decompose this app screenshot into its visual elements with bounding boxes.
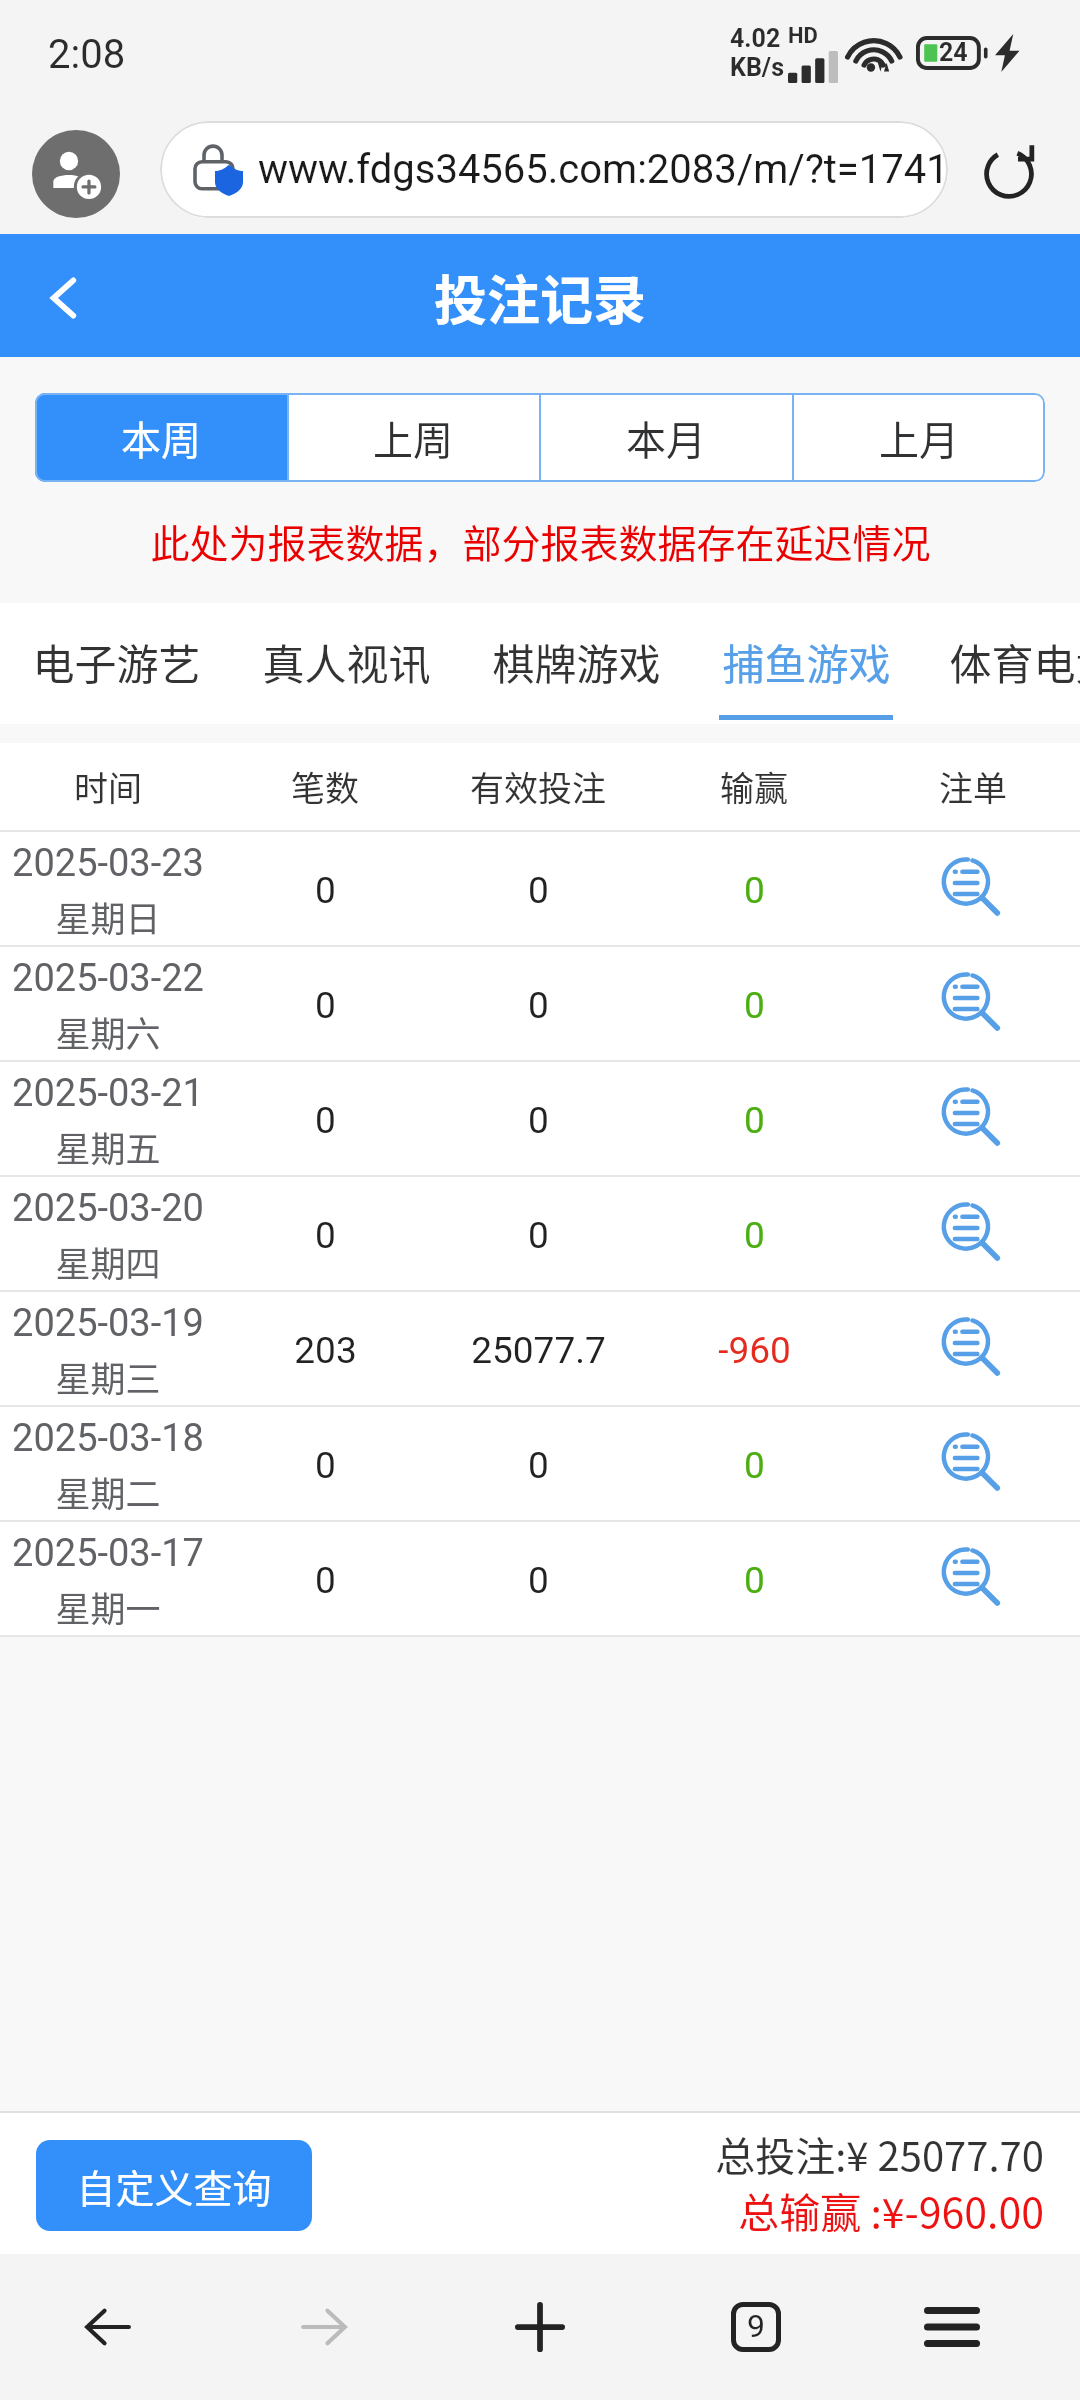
staticText: 总输赢 :¥-960.00 — [738, 2180, 1044, 2239]
staticText: 4.02 — [730, 24, 781, 53]
button[interactable]: Back — [0, 238, 130, 357]
button[interactable]: 体育电竞 — [949, 603, 1080, 724]
staticText: 0 — [315, 1214, 336, 1257]
staticText: 0 — [528, 1099, 549, 1142]
staticText: 0 — [528, 869, 549, 912]
staticText: HD — [788, 23, 818, 49]
staticText: 总投注:¥ 25077.70 — [715, 2125, 1044, 2183]
staticText: 真人视讯 — [262, 631, 431, 692]
staticText: 棋牌游戏 — [492, 631, 661, 692]
button[interactable]: View bet detail — [866, 1292, 1080, 1405]
staticText: KB/s — [730, 53, 784, 82]
button[interactable]: Back — [0, 2254, 216, 2400]
staticText: 本周 — [121, 409, 201, 467]
staticText: 0 — [315, 869, 336, 912]
staticText: 有效投注 — [470, 762, 606, 811]
staticText: 0 — [744, 1444, 765, 1487]
button[interactable]: 棋牌游戏 — [489, 603, 663, 724]
staticText: 星期二 — [55, 1466, 161, 1517]
staticText: 星期四 — [55, 1236, 161, 1287]
staticText: 2025-03-17 — [12, 1531, 204, 1576]
staticText: 2025-03-19 — [12, 1301, 204, 1346]
staticText: 本月 — [626, 409, 706, 467]
button[interactable]: View bet detail — [866, 1062, 1080, 1175]
button[interactable]: Reload — [970, 135, 1048, 213]
staticText: 笔数 — [291, 762, 359, 811]
button[interactable]: View bet detail — [866, 1407, 1080, 1520]
staticText: 2025-03-21 — [12, 1071, 204, 1116]
staticText: 电子游艺 — [32, 631, 201, 692]
staticText: 上周 — [373, 409, 453, 467]
staticText: 2025-03-18 — [12, 1416, 204, 1461]
staticText: 自定义查询 — [76, 2158, 272, 2214]
staticText: 203 — [294, 1329, 357, 1372]
staticText: 0 — [744, 869, 765, 912]
staticText: 0 — [744, 1099, 765, 1142]
button[interactable]: Profile — [32, 130, 120, 218]
button[interactable]: 捕鱼游戏 — [719, 603, 893, 724]
button[interactable]: 本月 — [539, 393, 792, 482]
staticText: 0 — [528, 984, 549, 1027]
staticText: 时间 — [74, 762, 142, 811]
button[interactable]: View bet detail — [866, 832, 1080, 945]
staticText: 25077.7 — [471, 1329, 606, 1372]
button[interactable]: Tabs — [648, 2254, 864, 2400]
button[interactable]: Forward — [216, 2254, 432, 2400]
button[interactable]: 真人视讯 — [259, 603, 433, 724]
staticText: 星期一 — [55, 1581, 161, 1632]
staticText: 0 — [315, 984, 336, 1027]
staticText: 星期三 — [55, 1351, 161, 1402]
staticText: 捕鱼游戏 — [722, 631, 891, 692]
button[interactable]: 自定义查询 — [36, 2140, 312, 2231]
button[interactable]: New tab — [432, 2254, 648, 2400]
staticText: 2025-03-23 — [12, 841, 204, 886]
staticText: 0 — [744, 1559, 765, 1602]
staticText: 0 — [744, 1214, 765, 1257]
staticText: 0 — [315, 1444, 336, 1487]
staticText: 2:08 — [48, 31, 126, 78]
staticText: 输赢 — [720, 762, 788, 811]
staticText: 上月 — [879, 409, 959, 467]
button[interactable]: 本周 — [35, 393, 287, 482]
button[interactable]: View bet detail — [866, 1177, 1080, 1290]
button[interactable]: View bet detail — [866, 947, 1080, 1060]
staticText: 2025-03-20 — [12, 1186, 204, 1231]
staticText: 0 — [315, 1099, 336, 1142]
button[interactable]: 上月 — [792, 393, 1045, 482]
staticText: 9 — [747, 2307, 765, 2345]
staticText: 星期六 — [55, 1006, 161, 1057]
staticText: www.fdgs34565.com:2083/m/?t=1741 — [258, 146, 948, 193]
staticText: 0 — [528, 1214, 549, 1257]
staticText: 0 — [528, 1559, 549, 1602]
staticText: -960 — [718, 1329, 791, 1372]
staticText: 此处为报表数据，部分报表数据存在延迟情况 — [150, 513, 931, 569]
staticText: 星期日 — [55, 891, 161, 942]
staticText: 体育电竞 — [949, 631, 1080, 692]
button[interactable]: 上周 — [287, 393, 539, 482]
button[interactable]: Menu — [864, 2254, 1080, 2400]
button[interactable]: View bet detail — [866, 1522, 1080, 1635]
button[interactable]: 电子游艺 — [29, 603, 203, 724]
staticText: 注单 — [939, 762, 1007, 811]
staticText: 星期五 — [55, 1121, 161, 1172]
staticText: 0 — [744, 984, 765, 1027]
staticText: 投注记录 — [434, 259, 646, 336]
staticText: 0 — [528, 1444, 549, 1487]
staticText: 0 — [315, 1559, 336, 1602]
staticText: 2025-03-22 — [12, 956, 204, 1001]
staticText: 24 — [939, 38, 968, 67]
button[interactable]: Address bar — [160, 121, 948, 218]
